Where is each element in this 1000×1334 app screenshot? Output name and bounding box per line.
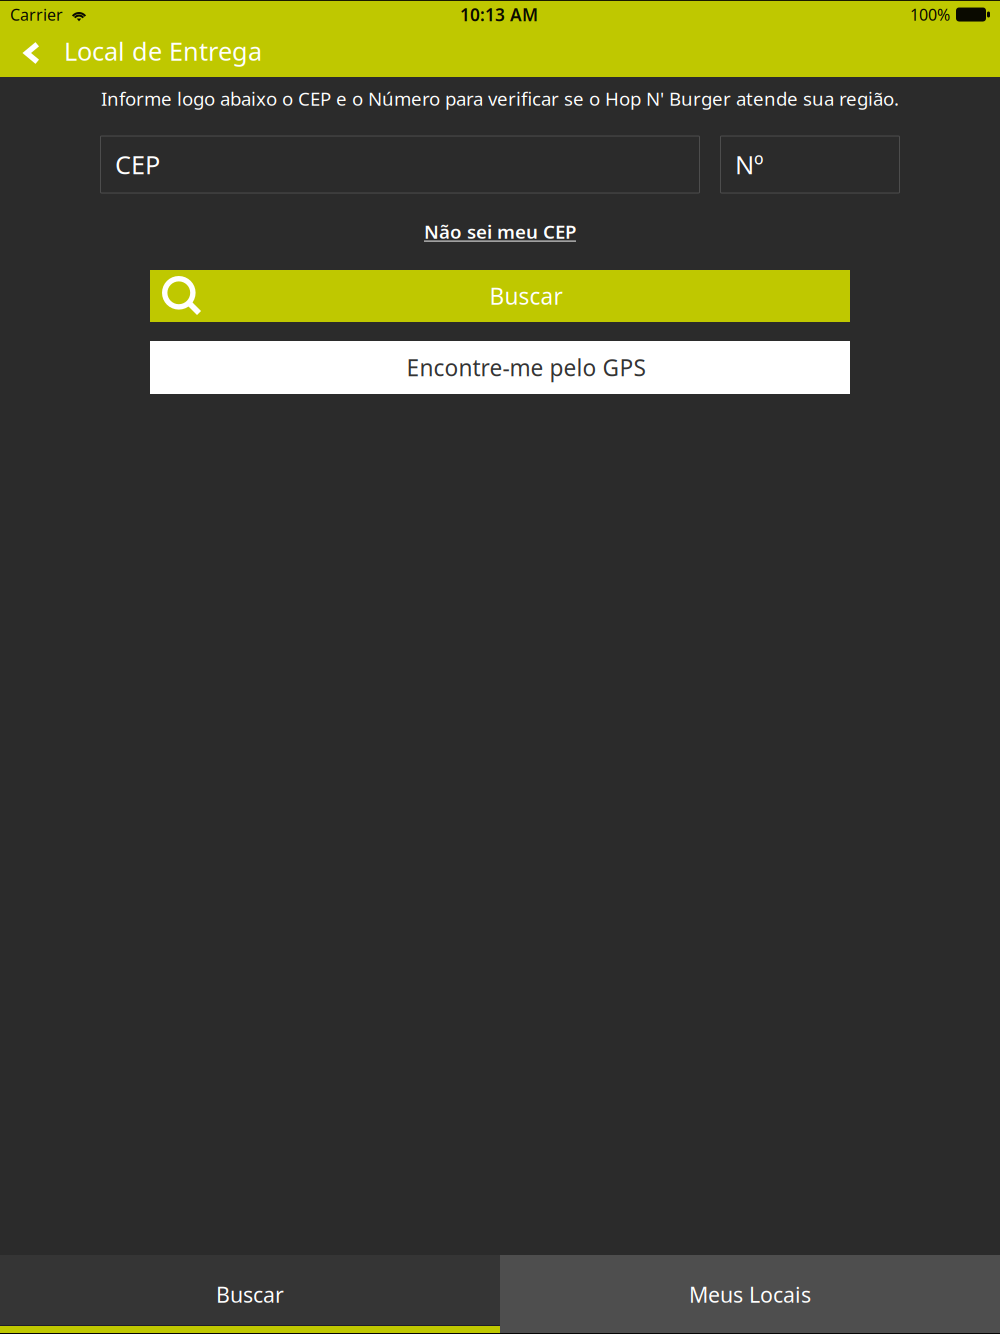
staticText: 10:13 AM xyxy=(460,3,538,26)
staticText: Nº xyxy=(735,148,764,181)
staticText: Encontre-me pelo GPS xyxy=(406,352,645,382)
button[interactable]: Buscar xyxy=(0,1255,500,1334)
staticText: 100% xyxy=(910,4,950,25)
button[interactable]: Encontre-me pelo GPS xyxy=(150,341,850,394)
staticText: Buscar xyxy=(489,281,562,311)
staticText: Buscar xyxy=(216,1280,284,1309)
button[interactable]: Buscar xyxy=(150,270,850,322)
button[interactable]: Não sei meu CEP xyxy=(424,208,576,254)
staticText: Meus Locais xyxy=(689,1280,811,1309)
staticText: Não sei meu CEP xyxy=(424,219,576,244)
staticText: CEP xyxy=(115,148,160,181)
staticText: Local de Entrega xyxy=(64,34,262,68)
button[interactable]: Back xyxy=(0,29,64,77)
staticText: Informe logo abaixo o CEP e o Número par… xyxy=(101,86,899,111)
button[interactable]: Nº xyxy=(720,135,900,193)
button[interactable]: Meus Locais xyxy=(500,1255,1000,1334)
button[interactable]: CEP xyxy=(100,135,700,193)
staticText: Carrier xyxy=(10,4,63,25)
